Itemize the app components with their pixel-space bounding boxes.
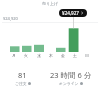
staticText: 81 — [18, 70, 27, 80]
staticText: ご注文 — [15, 81, 27, 86]
staticText: 月 — [12, 53, 16, 58]
staticText: 土 — [73, 53, 77, 58]
other: Info — [80, 82, 83, 85]
staticText: 水 — [37, 53, 41, 58]
staticText: 売り上げ — [42, 1, 59, 6]
other: Info — [28, 82, 31, 85]
staticText: 火 — [24, 53, 28, 58]
staticText: ¥24,927 — [62, 10, 79, 16]
staticText: 木 — [49, 53, 53, 58]
staticText: オンライン — [59, 81, 79, 86]
button[interactable]: 売り上げ — [0, 0, 100, 6]
staticText: ¥24,920 — [3, 16, 18, 21]
staticText: 23 時間 6 分 — [50, 70, 92, 80]
staticText: 日 — [85, 53, 89, 58]
button[interactable]: ¥24,927 — [59, 9, 87, 17]
button[interactable]: 81 — [0, 70, 45, 86]
staticText: 金 — [61, 53, 65, 58]
button[interactable]: 23 時間 6 分 — [49, 70, 93, 86]
other: More — [80, 11, 84, 15]
